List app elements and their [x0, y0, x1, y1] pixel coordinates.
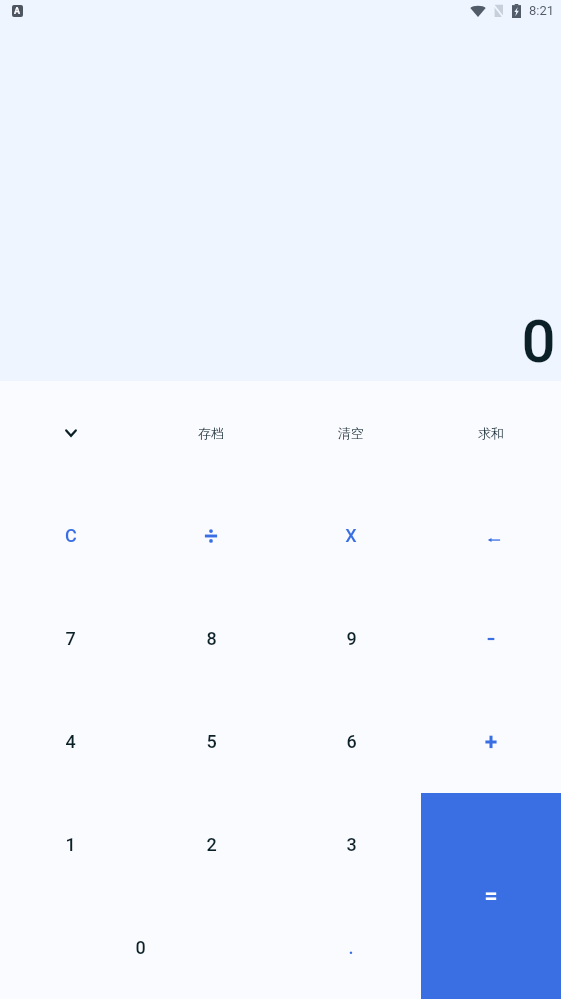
- staticText: C: [65, 525, 77, 546]
- staticText: 求和: [478, 425, 504, 441]
- staticText: 清空: [338, 425, 364, 441]
- button[interactable]: 8: [141, 587, 281, 690]
- staticText: 9: [346, 628, 357, 649]
- staticText: 存档: [198, 425, 224, 441]
- staticText: .: [348, 937, 354, 958]
- button[interactable]: 9: [281, 587, 421, 690]
- staticText: 8:21: [529, 3, 555, 18]
- button[interactable]: 3: [281, 793, 421, 896]
- staticText: 1: [65, 834, 76, 855]
- button[interactable]: C: [0, 484, 141, 587]
- staticText: X: [345, 525, 357, 546]
- button[interactable]: Divide: [141, 484, 281, 587]
- staticText: 6: [346, 731, 357, 752]
- button[interactable]: Toggle keypad: [0, 381, 141, 484]
- button[interactable]: 2: [141, 793, 281, 896]
- other: App icon: [12, 5, 23, 17]
- button[interactable]: Equals: [421, 793, 561, 999]
- button[interactable]: 存档: [141, 381, 281, 484]
- button[interactable]: X: [281, 484, 421, 587]
- button[interactable]: Backspace: [421, 484, 561, 587]
- button[interactable]: 4: [0, 690, 141, 793]
- button[interactable]: 5: [141, 690, 281, 793]
- staticText: 2: [206, 834, 217, 855]
- staticText: 0: [521, 306, 556, 376]
- staticText: 7: [65, 628, 76, 649]
- button[interactable]: 7: [0, 587, 141, 690]
- staticText: 0: [135, 937, 146, 958]
- staticText: 5: [206, 731, 217, 752]
- other: No SIM: [493, 4, 503, 17]
- button[interactable]: 清空: [281, 381, 421, 484]
- staticText: 4: [65, 731, 76, 752]
- button[interactable]: 1: [0, 793, 141, 896]
- button[interactable]: 6: [281, 690, 421, 793]
- staticText: A: [14, 6, 21, 17]
- staticText: 8: [206, 628, 217, 649]
- button[interactable]: Minus: [421, 587, 561, 690]
- button[interactable]: 求和: [421, 381, 561, 484]
- button[interactable]: 0: [0, 896, 281, 999]
- button[interactable]: .: [281, 896, 421, 999]
- staticText: 3: [346, 834, 357, 855]
- button[interactable]: Plus: [421, 690, 561, 793]
